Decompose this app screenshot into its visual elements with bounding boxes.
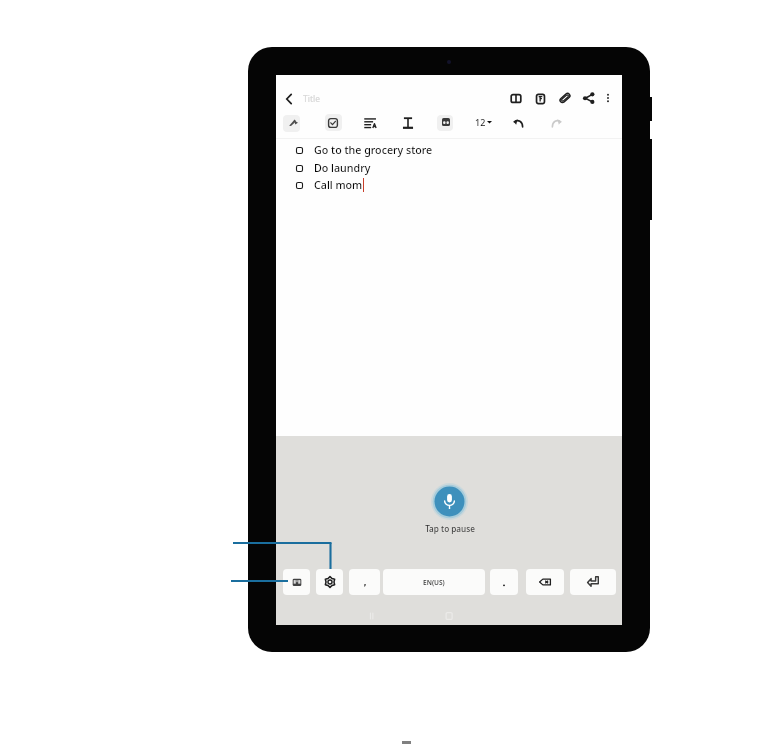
staticText: Title: [303, 93, 320, 105]
button[interactable]: Pen: [289, 118, 298, 126]
button[interactable]: Page view: [536, 94, 545, 104]
button[interactable]: Text format: [402, 117, 414, 129]
button[interactable]: Tap to pause: [431, 483, 468, 520]
button[interactable]: Redo: [549, 116, 563, 130]
staticText: Do laundry: [314, 161, 371, 176]
staticText: Call mom: [314, 178, 363, 193]
button[interactable]: EN(US): [383, 569, 485, 595]
button[interactable]: Call mom: [296, 177, 364, 193]
button[interactable]: Undo: [512, 116, 526, 130]
button[interactable]: Keyboard: [283, 569, 310, 595]
button[interactable]: Split view: [511, 94, 521, 103]
button[interactable]: Home: [443, 610, 455, 622]
button[interactable]: Settings: [316, 569, 343, 595]
button[interactable]: Do laundry: [296, 160, 371, 176]
button[interactable]: Backspace: [526, 569, 564, 595]
button[interactable]: Enter: [570, 569, 616, 595]
button[interactable]: Period: [490, 569, 518, 595]
button[interactable]: Recents: [366, 610, 378, 622]
button[interactable]: Back: [281, 91, 297, 107]
button[interactable]: More options: [603, 93, 613, 103]
staticText: EN(US): [423, 578, 445, 587]
button[interactable]: Paragraph style: [364, 117, 377, 129]
button[interactable]: Insert: [442, 118, 450, 126]
button[interactable]: 12: [475, 115, 492, 129]
button[interactable]: Checklist: [328, 118, 338, 128]
staticText: Go to the grocery store: [314, 143, 433, 158]
staticText: 12: [475, 116, 486, 128]
staticText: Tap to pause: [425, 523, 475, 534]
button[interactable]: Share: [583, 92, 595, 104]
button[interactable]: Comma: [349, 569, 380, 595]
button[interactable]: Go to the grocery store: [296, 142, 433, 158]
button[interactable]: Attach: [559, 92, 571, 104]
